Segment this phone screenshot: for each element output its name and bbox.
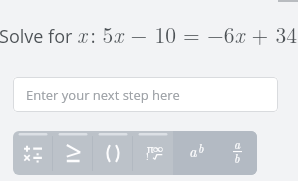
button[interactable]: Fraction: [215, 131, 257, 175]
button[interactable]: Constants and roots: [133, 131, 173, 175]
staticText: Enter your next step here: [26, 86, 180, 104]
staticText: Solve for x : 5x − 10 = −6x + 34: [0, 19, 297, 49]
staticText: a: [189, 140, 197, 161]
staticText: !: [146, 149, 149, 163]
button[interactable]: Exponent: [173, 131, 215, 175]
button[interactable]: Parentheses: [93, 131, 133, 175]
button[interactable]: Enter your next step here: [13, 77, 278, 112]
staticText: ∞: [153, 141, 163, 155]
staticText: b: [198, 139, 204, 156]
staticText: π: [147, 142, 154, 156]
button[interactable]: Arithmetic operators: [13, 131, 53, 175]
staticText: a: [234, 135, 241, 152]
staticText: b: [234, 149, 240, 166]
button[interactable]: Comparison operators: [53, 131, 93, 175]
